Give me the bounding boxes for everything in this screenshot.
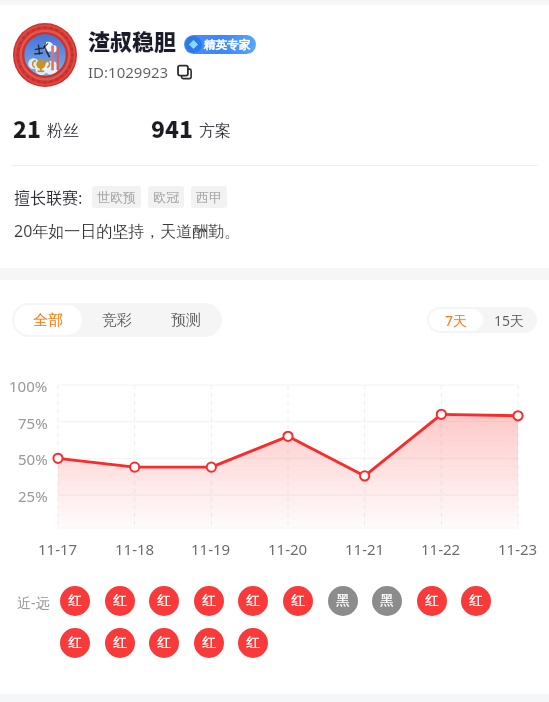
staticText: 精英专家 xyxy=(204,38,250,52)
staticText: 50% xyxy=(18,449,48,469)
staticText: 11-21 xyxy=(345,539,385,559)
button[interactable]: 精英专家 xyxy=(184,35,256,54)
button[interactable]: Copy ID xyxy=(176,64,193,81)
button[interactable]: 全部 xyxy=(14,305,82,335)
staticText: 941 xyxy=(151,111,194,144)
button[interactable]: 红 xyxy=(105,586,135,616)
staticText: 11-23 xyxy=(498,539,538,559)
staticText: 预测 xyxy=(171,311,201,330)
staticText: 红 xyxy=(246,592,260,610)
staticText: 红 xyxy=(68,634,82,652)
staticText: 西甲 xyxy=(196,189,222,205)
button[interactable]: 黑 xyxy=(328,586,358,616)
staticText: 红 xyxy=(469,592,483,610)
button[interactable]: 红 xyxy=(194,586,224,616)
staticText: 11-20 xyxy=(268,539,308,559)
staticText: 25% xyxy=(18,486,48,506)
button[interactable]: 941 xyxy=(151,111,231,144)
staticText: 20年如一日的坚持，天道酬勤。 xyxy=(14,220,241,242)
staticText: 红 xyxy=(425,592,439,610)
staticText: ID:1029923 xyxy=(88,62,169,82)
staticText: 100% xyxy=(9,376,48,396)
button[interactable]: 黑 xyxy=(372,586,402,616)
staticText: 红 xyxy=(291,592,305,610)
staticText: 红 xyxy=(157,592,171,610)
staticText: 竞彩 xyxy=(102,311,132,330)
staticText: 11-18 xyxy=(115,539,155,559)
staticText: 黑 xyxy=(380,592,394,610)
button[interactable]: 红 xyxy=(417,586,447,616)
button[interactable]: 竞彩 xyxy=(82,305,151,335)
staticText: 粉丝 xyxy=(47,121,79,141)
button[interactable]: 红 xyxy=(60,586,90,616)
staticText: 全部 xyxy=(33,311,63,330)
button[interactable]: 世欧预 xyxy=(92,186,141,208)
staticText: 渣叔稳胆 xyxy=(88,24,177,56)
staticText: 7天 xyxy=(445,311,468,330)
staticText: 红 xyxy=(202,592,216,610)
button[interactable]: 红 xyxy=(105,628,135,658)
staticText: 11-17 xyxy=(38,539,78,559)
button[interactable]: 7天 xyxy=(429,309,483,331)
button[interactable]: 红 xyxy=(60,628,90,658)
staticText: 黑 xyxy=(336,592,350,610)
button[interactable]: 红 xyxy=(461,586,491,616)
staticText: 红 xyxy=(113,634,127,652)
staticText: 21 xyxy=(13,111,42,144)
staticText: 红 xyxy=(157,634,171,652)
staticText: 11-19 xyxy=(191,539,231,559)
staticText: 方案 xyxy=(199,121,231,141)
button[interactable]: 预测 xyxy=(151,305,220,335)
staticText: 世欧预 xyxy=(97,189,136,205)
staticText: 红 xyxy=(113,592,127,610)
staticText: 75% xyxy=(18,413,48,433)
staticText: 15天 xyxy=(494,311,525,330)
button[interactable]: 红 xyxy=(283,586,313,616)
staticText: 擅长联赛: xyxy=(14,185,83,208)
button[interactable]: 红 xyxy=(238,628,268,658)
button[interactable]: 红 xyxy=(194,628,224,658)
staticText: 11-22 xyxy=(421,539,461,559)
staticText: 欧冠 xyxy=(153,189,179,205)
button[interactable]: 欧冠 xyxy=(148,186,184,208)
button[interactable]: Avatar xyxy=(13,23,77,87)
button[interactable]: 红 xyxy=(238,586,268,616)
staticText: 红 xyxy=(68,592,82,610)
button[interactable]: 21 xyxy=(13,111,79,144)
button[interactable]: 西甲 xyxy=(191,186,227,208)
button[interactable]: 15天 xyxy=(483,309,535,331)
staticText: 红 xyxy=(202,634,216,652)
staticText: 红 xyxy=(246,634,260,652)
button[interactable]: 红 xyxy=(149,628,179,658)
staticText: 近-远 xyxy=(17,593,50,612)
button[interactable]: 红 xyxy=(149,586,179,616)
